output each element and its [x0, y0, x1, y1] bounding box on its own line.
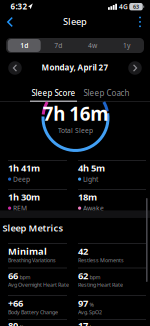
button[interactable] [128, 61, 142, 75]
staticText: 1y [123, 41, 130, 50]
staticText: 66 [8, 269, 18, 282]
staticText: 18m [78, 191, 97, 203]
staticText: Avg Overnight Heart Rate [8, 281, 69, 288]
staticText: REM [13, 204, 27, 213]
staticText: +66 [8, 297, 23, 309]
staticText: Sleep Metrics [2, 222, 63, 234]
staticText: Resting Heart Rate [78, 281, 123, 288]
button[interactable]: 4w [75, 38, 109, 53]
button[interactable] [8, 61, 22, 75]
staticText: Awake [83, 204, 104, 213]
staticText: 63 [133, 3, 139, 10]
staticText: 42 [78, 245, 88, 257]
staticText: 4h 5m [78, 162, 105, 174]
staticText: Total Sleep [58, 126, 93, 135]
staticText: Sleep Coach [83, 88, 129, 98]
staticText: Breathing Variations [8, 257, 56, 264]
staticText: 17 [78, 319, 88, 326]
button[interactable]: 1y [109, 38, 143, 53]
staticText: Restless Moments [78, 257, 124, 264]
button[interactable] [134, 15, 146, 28]
staticText: 1d [20, 41, 28, 50]
button[interactable]: 1d [7, 38, 41, 53]
staticText: % [19, 323, 23, 326]
button[interactable] [2, 14, 18, 30]
staticText: 7d [54, 41, 62, 50]
staticText: 62 [78, 269, 88, 282]
staticText: 6:32 [10, 1, 27, 12]
staticText: Avg. SpO2 [78, 309, 102, 316]
staticText: 80 [8, 319, 18, 326]
staticText: brpm [89, 323, 102, 326]
staticText: 1h 30m [8, 191, 40, 203]
staticText: Minimal [8, 245, 47, 257]
staticText: 4G [119, 2, 128, 11]
button[interactable]: Sleep Score [28, 86, 78, 100]
staticText: Sleep [63, 15, 87, 28]
staticText: Monday, April 27 [41, 62, 108, 73]
staticText: % [89, 301, 93, 308]
staticText: 7h 16m [43, 101, 108, 126]
staticText: bpm [19, 274, 30, 281]
staticText: Body Battery Change [8, 309, 58, 316]
staticText: bpm [89, 274, 100, 281]
button[interactable]: Sleep Coach [81, 86, 131, 100]
staticText: Deep [13, 175, 30, 184]
staticText: Light [83, 175, 98, 184]
staticText: 1h 41m [8, 162, 40, 174]
staticText: 97 [78, 297, 88, 309]
button[interactable]: 7d [41, 38, 75, 53]
staticText: Sleep Score [31, 88, 75, 98]
staticText: 4w [88, 41, 97, 50]
